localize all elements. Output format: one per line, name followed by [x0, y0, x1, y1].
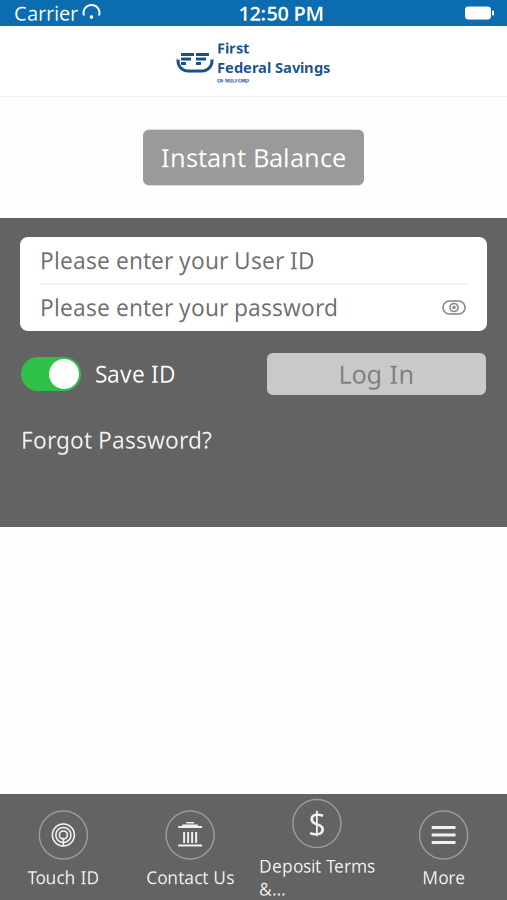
button[interactable]: Log In — [267, 353, 486, 395]
button[interactable]: Forgot Password? — [0, 419, 233, 461]
staticText: Forgot Password? — [21, 425, 212, 455]
button[interactable]: Contact Us — [127, 803, 254, 897]
button[interactable]: More — [380, 803, 507, 897]
staticText: More — [422, 866, 465, 889]
staticText: Touch ID — [27, 866, 99, 889]
staticText: OF MILFORD — [217, 77, 249, 84]
button[interactable]: Save ID — [21, 357, 176, 391]
button[interactable]: Please enter your password — [20, 284, 487, 330]
staticText: 12:50 PM — [238, 0, 324, 26]
button[interactable]: S — [253, 791, 380, 900]
staticText: Instant Balance — [161, 141, 346, 174]
staticText: Federal Savings — [217, 57, 330, 77]
staticText: Please enter your User ID — [40, 245, 315, 275]
staticText: Deposit Terms &… — [259, 854, 375, 900]
staticText: Contact Us — [146, 866, 234, 889]
staticText: Carrier — [14, 0, 78, 26]
staticText: Save ID — [95, 359, 176, 389]
staticText: S — [308, 803, 325, 844]
staticText: Please enter your password — [40, 292, 338, 322]
button[interactable]: Please enter your User ID — [20, 237, 487, 283]
button[interactable]: Touch ID — [0, 803, 127, 897]
staticText: Log In — [338, 357, 414, 391]
staticText: First — [217, 38, 249, 57]
button[interactable]: Instant Balance — [143, 130, 364, 185]
